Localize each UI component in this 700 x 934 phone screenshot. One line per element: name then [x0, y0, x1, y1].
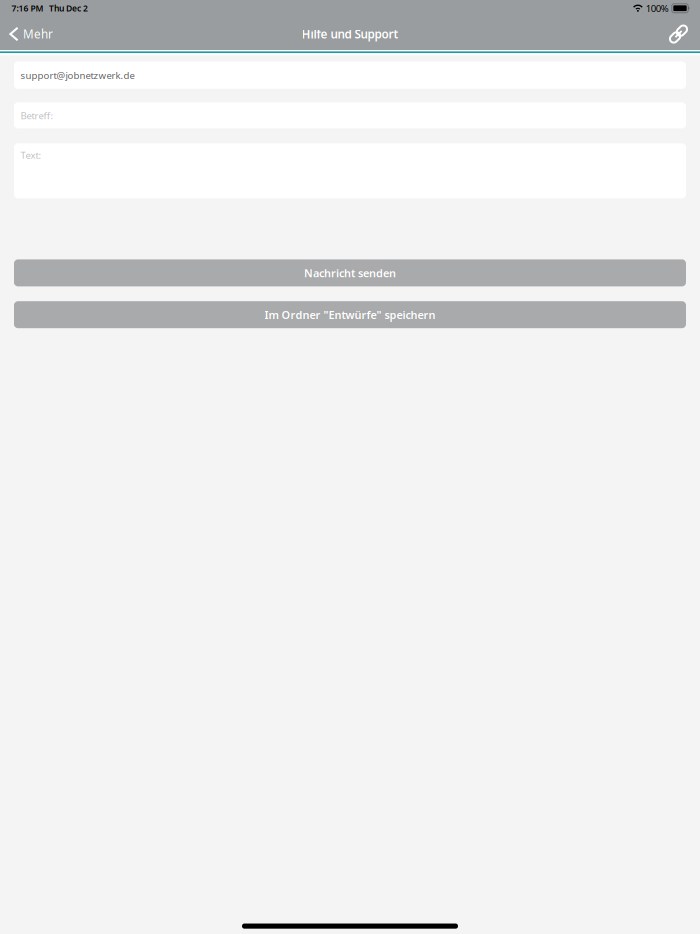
staticText: Betreff:	[20, 109, 53, 122]
button[interactable]: Mehr	[0, 17, 65, 51]
button[interactable]: Link teilen	[664, 17, 700, 51]
staticText: Nachricht senden	[304, 265, 396, 280]
staticText: 7:16 PM	[11, 2, 43, 14]
staticText: support@jobnetzwerk.de	[20, 69, 134, 82]
staticText: Text:	[20, 149, 41, 162]
button[interactable]: support@jobnetzwerk.de	[14, 61, 686, 89]
staticText: Hilfe und Support	[301, 26, 398, 42]
button[interactable]: Nachricht senden	[14, 259, 686, 286]
staticText: Thu Dec 2	[49, 2, 88, 14]
button[interactable]: Im Ordner "Entwürfe" speichern	[14, 301, 686, 328]
staticText: Im Ordner "Entwürfe" speichern	[264, 307, 435, 322]
staticText: 100%	[646, 2, 669, 15]
staticText: Mehr	[23, 26, 53, 42]
button[interactable]: Betreff:	[14, 102, 686, 128]
